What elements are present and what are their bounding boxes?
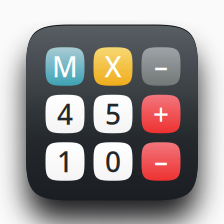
staticText: 5 — [105, 95, 121, 133]
button[interactable]: 4 — [45, 95, 84, 133]
button[interactable]: 1 — [45, 142, 84, 181]
staticText: – — [154, 143, 168, 180]
staticText: M — [52, 48, 78, 85]
staticText: X — [104, 48, 121, 85]
button[interactable]: + — [141, 95, 180, 133]
button[interactable]: 0 — [93, 142, 132, 181]
button[interactable]: X — [93, 47, 132, 86]
staticText: 4 — [57, 95, 73, 133]
staticText: – — [154, 48, 168, 85]
button[interactable]: – — [141, 47, 180, 86]
staticText: + — [153, 95, 169, 133]
staticText: 0 — [105, 143, 121, 180]
button[interactable]: M — [45, 47, 84, 86]
button[interactable]: 5 — [93, 95, 132, 133]
button[interactable]: – — [141, 142, 180, 181]
staticText: 1 — [57, 143, 73, 180]
